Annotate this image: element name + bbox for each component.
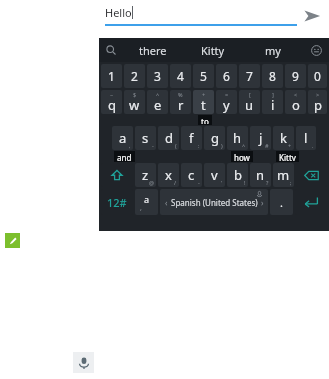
button[interactable]: a [112,126,133,150]
staticText: and [117,152,132,161]
staticText: j [259,129,263,147]
button[interactable]: h [227,126,248,150]
button[interactable]: 2 [124,64,145,88]
staticText: > [316,91,320,98]
button[interactable]: v [204,163,225,187]
button[interactable]: Search [99,38,123,62]
button[interactable]: ~ [101,90,122,114]
button[interactable]: 7 [239,64,260,88]
staticText: 12# [107,195,127,210]
button[interactable]: n [250,163,271,187]
button[interactable]: 12# [101,189,133,215]
button[interactable]: x [158,163,179,187]
button[interactable]: c [181,163,202,187]
button[interactable]: Voice input [73,352,94,373]
staticText: s [142,129,149,147]
staticText: / [174,179,177,186]
button[interactable]: 6 [216,64,237,88]
staticText: ‹ [165,197,168,208]
button[interactable]: $ [124,90,145,114]
button[interactable]: there [123,38,183,62]
staticText: < [294,91,298,98]
button[interactable]: . [270,189,293,215]
button[interactable]: Send [299,3,325,29]
button[interactable]: + [193,90,214,114]
staticText: 5 [200,68,207,84]
staticText: 8 [269,68,276,84]
staticText: ! [244,179,246,186]
staticText: g [211,129,219,147]
staticText: ^ [156,91,160,98]
staticText: ] [272,91,274,98]
staticText: 0 [314,68,321,84]
button[interactable]: 4 [170,64,191,88]
staticText: m [277,166,290,184]
staticText: 1 [108,68,115,84]
button[interactable]: Symbols and comma [135,189,158,215]
staticText: b [234,166,242,184]
staticText: a [119,129,127,147]
button[interactable]: b [227,163,248,187]
staticText: - [198,179,200,186]
staticText: t [201,96,206,114]
button[interactable]: j [250,126,271,150]
staticText: ' [221,179,223,186]
button[interactable]: z [135,163,156,187]
button[interactable]: f [181,126,202,150]
staticText: ~ [110,91,114,98]
button[interactable]: d [158,126,179,150]
staticText: w [129,96,140,114]
button[interactable]: l [296,126,316,150]
staticText: Kitty [279,152,296,161]
button[interactable]: k [273,126,294,150]
staticText: d [165,129,173,147]
button[interactable]: m [273,163,294,187]
staticText: there [139,43,167,58]
button[interactable]: Enter [295,189,327,215]
button[interactable]: ‹ [160,189,268,215]
button[interactable]: 3 [147,64,168,88]
button[interactable]: [ [239,90,260,114]
staticText: Kitty [201,43,225,58]
staticText: e [154,96,162,114]
staticText: x [165,166,172,184]
button[interactable]: 8 [262,64,283,88]
button[interactable]: my [243,38,303,62]
staticText: c [188,166,195,184]
button[interactable]: < [285,90,306,114]
staticText: ^ [242,142,246,149]
staticText: Hello [105,5,132,20]
staticText: + [288,142,292,149]
staticText: i [271,96,275,114]
button[interactable]: 9 [285,64,306,88]
staticText: k [280,129,287,147]
button[interactable]: Backspace [296,163,327,187]
staticText: q [108,96,116,114]
staticText: l [304,129,308,147]
button[interactable]: Kitty [183,38,243,62]
staticText: : [198,142,200,149]
staticText: 2 [131,68,138,84]
button[interactable]: Shift [101,163,133,187]
staticText: to [201,116,209,124]
button[interactable]: > [308,90,327,114]
button[interactable]: Emoji [303,38,329,62]
staticText: p [314,96,322,114]
button[interactable]: % [170,90,191,114]
staticText: . [312,142,314,149]
staticText: ( [175,142,177,149]
button[interactable]: 5 [193,64,214,88]
staticText: - [152,142,154,149]
button[interactable]: s [135,126,156,150]
button[interactable]: ] [262,90,283,114]
button[interactable]: ^ [147,90,168,114]
button[interactable]: g [204,126,225,150]
button[interactable]: Edit [5,233,20,248]
staticText: 3 [154,68,161,84]
staticText: v [211,166,218,184]
button[interactable]: 1 [101,64,122,88]
staticText: o [292,96,300,114]
button[interactable]: = [216,90,237,114]
staticText: ) [221,142,223,149]
button[interactable]: 0 [308,64,327,88]
